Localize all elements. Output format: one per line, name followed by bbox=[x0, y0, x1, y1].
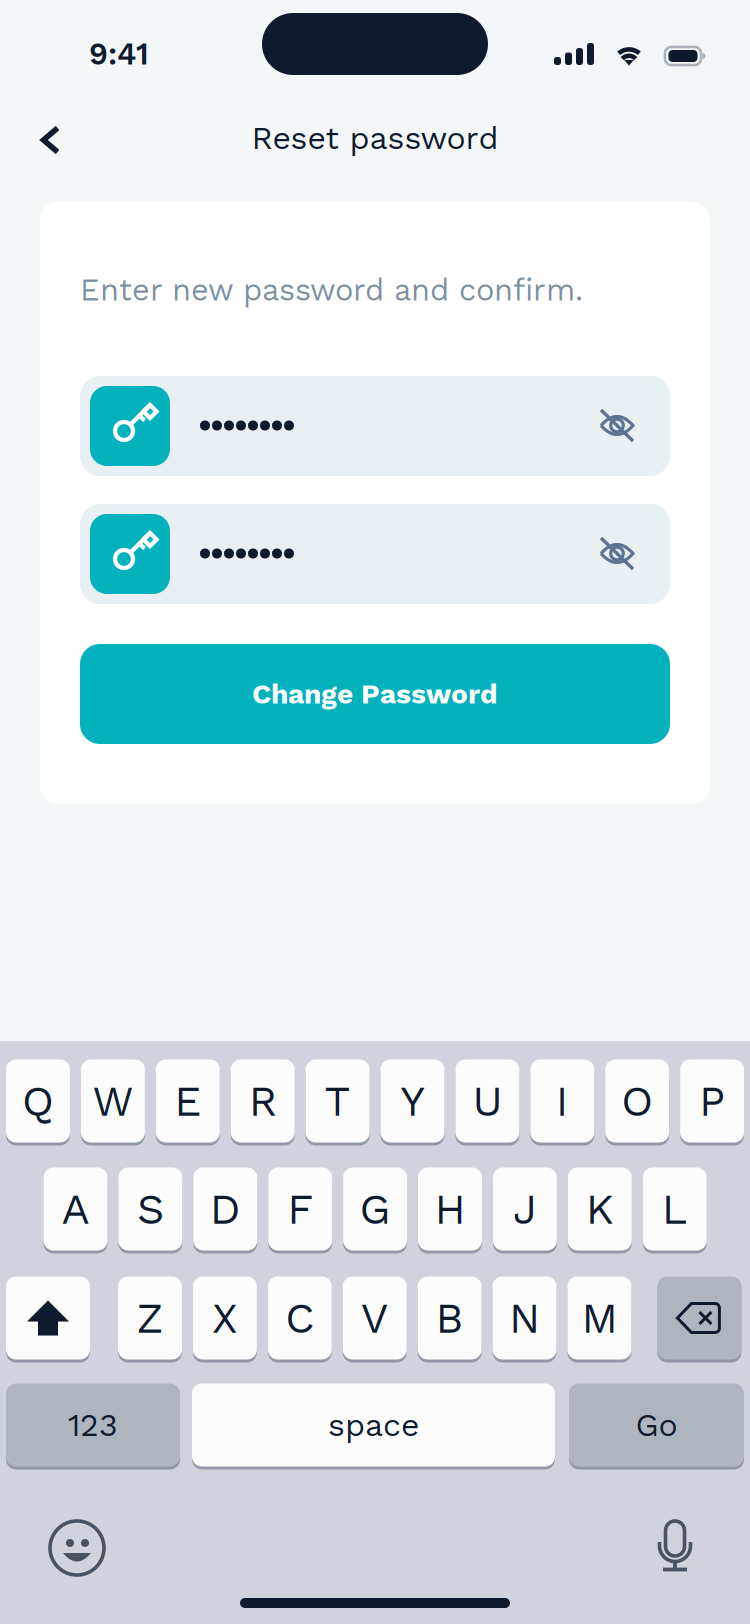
button[interactable]: C bbox=[268, 1275, 332, 1361]
staticText: L bbox=[662, 1184, 688, 1234]
button[interactable]: Q bbox=[6, 1058, 70, 1144]
staticText: Go bbox=[635, 1406, 677, 1444]
staticText: I bbox=[556, 1076, 569, 1126]
button[interactable]: W bbox=[81, 1058, 145, 1144]
button[interactable]: L bbox=[643, 1166, 707, 1252]
staticText: G bbox=[360, 1184, 391, 1234]
staticText: R bbox=[249, 1076, 277, 1126]
button[interactable]: H bbox=[418, 1166, 482, 1252]
staticText: O bbox=[621, 1076, 653, 1126]
staticText: Reset password bbox=[251, 119, 498, 157]
button[interactable]: Show password bbox=[580, 389, 654, 463]
staticText: D bbox=[210, 1184, 241, 1234]
staticText: Z bbox=[136, 1293, 163, 1343]
button[interactable]: Back bbox=[14, 109, 80, 175]
staticText: N bbox=[509, 1293, 540, 1343]
staticText: U bbox=[472, 1076, 502, 1126]
button[interactable]: Delete bbox=[657, 1275, 741, 1361]
staticText: T bbox=[325, 1076, 351, 1126]
staticText: W bbox=[92, 1076, 133, 1126]
button[interactable]: Y bbox=[380, 1058, 444, 1144]
button[interactable]: M bbox=[567, 1275, 631, 1361]
staticText: 9:41 bbox=[89, 36, 149, 72]
button[interactable]: Show password bbox=[580, 517, 654, 591]
staticText: 123 bbox=[68, 1406, 118, 1444]
button[interactable]: R bbox=[231, 1058, 295, 1144]
staticText: P bbox=[699, 1076, 725, 1126]
button[interactable]: E bbox=[156, 1058, 220, 1144]
staticText: space bbox=[328, 1406, 419, 1444]
staticText: Q bbox=[22, 1076, 54, 1126]
button[interactable]: Emoji keyboard bbox=[39, 1510, 115, 1586]
button[interactable]: A bbox=[43, 1166, 107, 1252]
staticText: H bbox=[434, 1184, 465, 1234]
staticText: M bbox=[581, 1293, 617, 1343]
button[interactable]: space bbox=[192, 1382, 555, 1468]
button[interactable]: T bbox=[306, 1058, 370, 1144]
staticText: J bbox=[513, 1184, 537, 1234]
staticText: A bbox=[61, 1184, 89, 1234]
button[interactable]: U bbox=[455, 1058, 519, 1144]
button[interactable]: F bbox=[268, 1166, 332, 1252]
button[interactable]: Shift bbox=[6, 1275, 90, 1361]
staticText: B bbox=[436, 1293, 464, 1343]
button[interactable]: O bbox=[605, 1058, 669, 1144]
button[interactable]: I bbox=[530, 1058, 594, 1144]
staticText: X bbox=[212, 1293, 238, 1343]
button[interactable]: D bbox=[193, 1166, 257, 1252]
button[interactable]: N bbox=[492, 1275, 556, 1361]
button[interactable]: S bbox=[118, 1166, 182, 1252]
staticText: F bbox=[287, 1184, 313, 1234]
staticText: Y bbox=[400, 1076, 424, 1126]
button[interactable]: J bbox=[493, 1166, 557, 1252]
staticText: S bbox=[137, 1184, 164, 1234]
staticText: C bbox=[285, 1293, 314, 1343]
staticText: E bbox=[174, 1076, 201, 1126]
button[interactable]: 123 bbox=[6, 1382, 180, 1468]
button[interactable]: Change Password bbox=[80, 644, 670, 744]
button[interactable]: V bbox=[343, 1275, 407, 1361]
button[interactable]: Dictate bbox=[637, 1510, 713, 1586]
button[interactable]: K bbox=[568, 1166, 632, 1252]
button[interactable]: G bbox=[343, 1166, 407, 1252]
button[interactable]: Z bbox=[118, 1275, 182, 1361]
staticText: Enter new password and confirm. bbox=[80, 272, 583, 308]
staticText: Change Password bbox=[252, 678, 498, 710]
button[interactable]: X bbox=[193, 1275, 257, 1361]
button[interactable]: Go bbox=[569, 1382, 744, 1468]
staticText: V bbox=[361, 1293, 389, 1343]
button[interactable]: P bbox=[680, 1058, 744, 1144]
staticText: K bbox=[586, 1184, 614, 1234]
button[interactable]: B bbox=[418, 1275, 482, 1361]
